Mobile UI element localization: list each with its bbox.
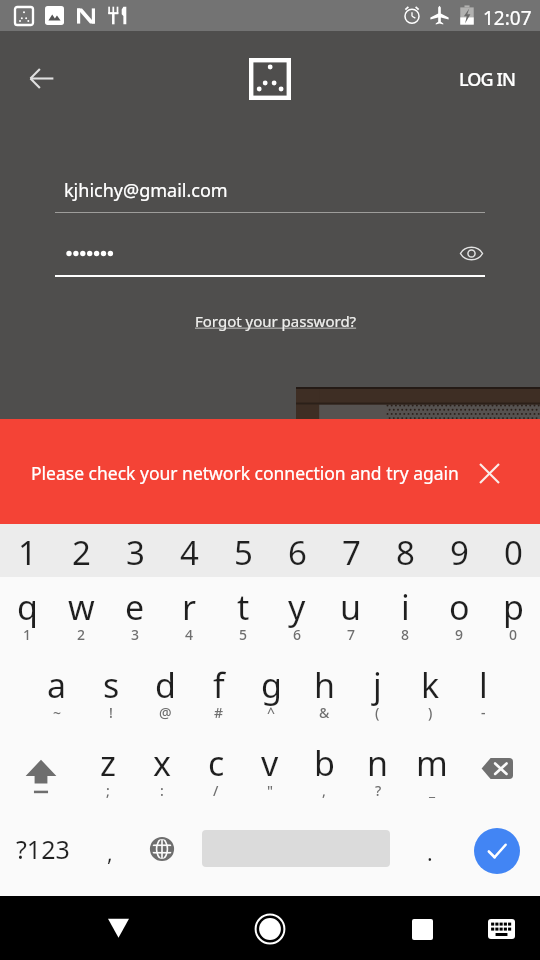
button[interactable]: Home: [246, 905, 294, 953]
button[interactable]: Show password: [450, 232, 492, 274]
staticText: -: [481, 703, 486, 722]
staticText: u: [340, 584, 362, 630]
button[interactable]: q: [0, 577, 54, 655]
button[interactable]: k: [404, 655, 457, 733]
staticText: q: [17, 584, 38, 630]
button[interactable]: ?123: [0, 811, 84, 896]
button[interactable]: Done: [456, 811, 540, 896]
button[interactable]: y: [270, 577, 324, 655]
button[interactable]: h: [298, 655, 351, 733]
button[interactable]: i: [378, 577, 432, 655]
staticText: 7: [347, 625, 356, 644]
button[interactable]: z: [81, 733, 135, 811]
staticText: 9: [450, 530, 469, 575]
staticText: 2: [72, 530, 91, 575]
staticText: ?: [375, 781, 382, 800]
staticText: 9: [455, 625, 464, 644]
staticText: ;: [106, 781, 110, 800]
staticText: Please check your network connection and…: [31, 461, 459, 485]
button[interactable]: 5: [216, 524, 270, 577]
staticText: .: [427, 839, 433, 868]
staticText: z: [100, 740, 116, 786]
button[interactable]: a: [30, 655, 84, 733]
button[interactable]: Back: [94, 904, 142, 952]
staticText: m: [416, 740, 448, 786]
staticText: 6: [288, 530, 307, 575]
button[interactable]: d: [138, 655, 192, 733]
button[interactable]: Back: [17, 54, 65, 102]
button[interactable]: 1: [0, 524, 54, 577]
button[interactable]: m: [405, 733, 459, 811]
staticText: ,: [322, 781, 326, 800]
button[interactable]: LOG IN: [442, 57, 532, 101]
button[interactable]: b: [297, 733, 351, 811]
button[interactable]: 8: [378, 524, 432, 577]
staticText: j: [373, 662, 382, 708]
staticText: n: [367, 740, 389, 786]
staticText: h: [314, 662, 336, 708]
button[interactable]: 4: [162, 524, 216, 577]
staticText: kjhichy@gmail.com: [64, 178, 228, 203]
staticText: 0: [504, 530, 523, 575]
staticText: p: [503, 584, 524, 630]
staticText: 1: [23, 625, 32, 644]
button[interactable]: Backspace: [459, 733, 540, 811]
button[interactable]: Forgot your password?: [188, 304, 364, 338]
button[interactable]: 7: [324, 524, 378, 577]
button[interactable]: 2: [54, 524, 108, 577]
staticText: v: [261, 740, 279, 786]
staticText: k: [421, 662, 440, 708]
staticText: 3: [126, 530, 145, 575]
button[interactable]: x: [135, 733, 189, 811]
staticText: 6: [293, 625, 302, 644]
staticText: 4: [180, 530, 199, 575]
staticText: o: [449, 584, 470, 630]
button[interactable]: .: [404, 811, 456, 896]
staticText: w: [68, 584, 95, 630]
button[interactable]: 9: [432, 524, 486, 577]
button[interactable]: Dismiss: [468, 452, 510, 494]
button[interactable]: ,: [84, 811, 136, 896]
button[interactable]: v: [243, 733, 297, 811]
button[interactable]: 0: [486, 524, 540, 577]
button[interactable]: w: [54, 577, 108, 655]
button[interactable]: Shift: [0, 733, 81, 811]
button[interactable]: s: [84, 655, 138, 733]
staticText: e: [125, 584, 145, 630]
button[interactable]: 3: [108, 524, 162, 577]
staticText: _: [429, 781, 436, 800]
button[interactable]: l: [457, 655, 510, 733]
staticText: c: [208, 740, 225, 786]
button[interactable]: j: [351, 655, 404, 733]
button[interactable]: e: [108, 577, 162, 655]
button[interactable]: g: [245, 655, 298, 733]
staticText: (: [375, 703, 380, 722]
button[interactable]: p: [486, 577, 540, 655]
staticText: r: [182, 584, 197, 630]
staticText: /: [213, 781, 219, 800]
button[interactable]: o: [432, 577, 486, 655]
button[interactable]: t: [216, 577, 270, 655]
staticText: y: [288, 584, 306, 630]
button[interactable]: n: [351, 733, 405, 811]
staticText: ): [428, 703, 433, 722]
staticText: ?123: [16, 832, 70, 866]
staticText: 3: [131, 625, 140, 644]
button[interactable]: r: [162, 577, 216, 655]
staticText: d: [155, 662, 176, 708]
button[interactable]: Recent apps: [398, 905, 446, 953]
staticText: 7: [342, 530, 361, 575]
button[interactable]: Switch keyboard: [477, 905, 525, 953]
staticText: 1: [18, 530, 37, 575]
button[interactable]: u: [324, 577, 378, 655]
staticText: 0: [509, 625, 518, 644]
staticText: ,: [107, 839, 113, 868]
button[interactable]: 6: [270, 524, 324, 577]
button[interactable]: Change language: [136, 811, 188, 896]
button[interactable]: c: [189, 733, 243, 811]
button[interactable]: f: [192, 655, 245, 733]
staticText: 5: [239, 625, 248, 644]
staticText: #: [214, 703, 224, 722]
staticText: a: [47, 662, 67, 708]
button[interactable]: Space: [188, 811, 404, 896]
